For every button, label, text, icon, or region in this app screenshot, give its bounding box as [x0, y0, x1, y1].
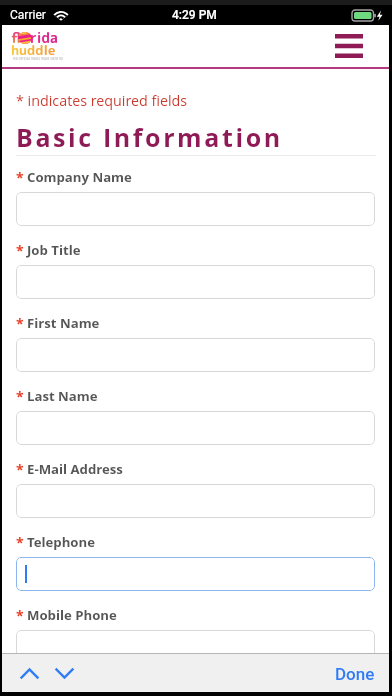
staticText: *: [16, 533, 24, 552]
staticText: *: [16, 460, 24, 479]
staticText: *: [16, 606, 24, 625]
staticText: First Name: [27, 314, 100, 332]
staticText: THE OFFICIAL TRAVEL TRADE SHOW FOR FLORI…: [13, 57, 63, 60]
button[interactable]: [16, 265, 375, 299]
staticText: Company Name: [27, 168, 132, 186]
button[interactable]: Next field: [46, 655, 82, 691]
staticText: Basic Information: [16, 120, 283, 154]
staticText: Last Name: [27, 387, 98, 405]
staticText: Mobile Phone: [27, 606, 117, 624]
staticText: Carrier: [10, 8, 46, 22]
button[interactable]: [16, 338, 375, 372]
staticText: huddle: [11, 40, 56, 59]
staticText: 4:29 PM: [172, 8, 217, 22]
button[interactable]: Done: [317, 655, 389, 691]
staticText: E-Mail Address: [27, 460, 123, 478]
staticText: *: [16, 387, 24, 406]
staticText: *: [16, 168, 24, 187]
staticText: *: [16, 241, 24, 260]
staticText: Job Title: [27, 241, 81, 259]
button[interactable]: [16, 411, 375, 445]
staticText: *: [16, 314, 24, 333]
button[interactable]: Previous field: [11, 655, 47, 691]
button[interactable]: Menu: [331, 30, 367, 62]
staticText: fl: [11, 28, 21, 48]
staticText: Done: [335, 664, 375, 684]
staticText: Telephone: [27, 533, 95, 551]
staticText: * indicates required fields: [16, 91, 188, 110]
button[interactable]: [16, 557, 375, 591]
staticText: rida: [30, 28, 58, 48]
button[interactable]: [16, 192, 375, 226]
button[interactable]: [16, 484, 375, 518]
button[interactable]: [16, 630, 375, 664]
